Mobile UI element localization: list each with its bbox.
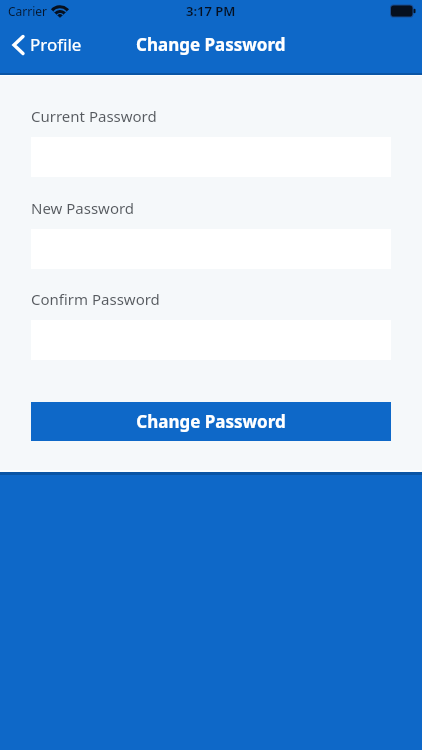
staticText: Confirm Password (31, 289, 160, 309)
staticText: New Password (31, 198, 135, 218)
staticText: Change Password (136, 410, 286, 433)
staticText: Carrier (8, 3, 48, 19)
staticText: 3:17 PM (186, 2, 236, 20)
staticText: Change Password (136, 33, 286, 56)
staticText: Profile (30, 33, 82, 56)
button[interactable]: Profile (0, 29, 90, 60)
button[interactable]: Change Password (31, 402, 391, 441)
staticText: Current Password (31, 106, 157, 126)
